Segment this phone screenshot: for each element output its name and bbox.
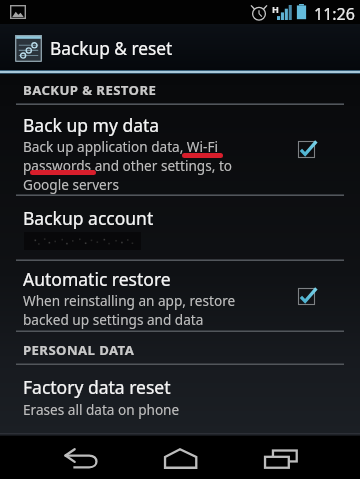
staticText: 11:26 bbox=[314, 3, 355, 25]
staticText: Backup & reset bbox=[50, 37, 173, 61]
button[interactable] bbox=[0, 105, 360, 195]
staticText: passwords and other settings, to bbox=[23, 156, 233, 175]
button[interactable] bbox=[0, 196, 360, 260]
button[interactable] bbox=[0, 261, 360, 331]
staticText: Automatic restore bbox=[23, 267, 171, 291]
staticText: Erases all data on phone bbox=[23, 400, 180, 419]
button[interactable]: Toggle setting bbox=[289, 132, 324, 167]
staticText: Backup account bbox=[23, 206, 154, 230]
staticText: H bbox=[272, 3, 279, 15]
staticText: PERSONAL DATA bbox=[23, 341, 135, 359]
button[interactable]: Toggle setting bbox=[289, 279, 324, 314]
button[interactable]: Back bbox=[52, 433, 100, 479]
staticText: Factory data reset bbox=[23, 375, 171, 399]
button[interactable]: Backup & reset bbox=[0, 24, 360, 70]
button[interactable]: Recent apps bbox=[256, 433, 304, 479]
staticText: Google servers bbox=[23, 175, 119, 194]
button[interactable]: Home bbox=[156, 433, 204, 479]
staticText: Back up application data, Wi-Fi bbox=[23, 137, 218, 156]
staticText: backed up settings and data bbox=[23, 310, 204, 329]
staticText: When reinstalling an app, restore bbox=[23, 291, 236, 310]
staticText: Back up my data bbox=[23, 113, 160, 137]
staticText: BACKUP & RESTORE bbox=[23, 81, 157, 99]
button[interactable] bbox=[0, 365, 360, 425]
